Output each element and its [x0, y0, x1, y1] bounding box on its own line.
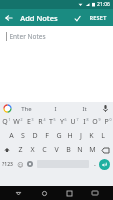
staticText: The — [21, 105, 32, 113]
button[interactable]: Back — [11, 186, 25, 200]
button[interactable]: E — [24, 115, 36, 129]
staticText: P — [104, 117, 109, 127]
staticText: Q — [2, 117, 8, 127]
staticText: ☺ — [17, 161, 24, 168]
staticText: W — [13, 117, 20, 127]
button[interactable]: A — [5, 129, 17, 143]
button[interactable]: M — [86, 143, 98, 157]
button[interactable]: Shift — [0, 143, 14, 157]
staticText: U — [70, 117, 76, 127]
staticText: E — [27, 117, 31, 127]
staticText: 6 — [64, 117, 67, 122]
button[interactable]: Settings — [25, 157, 35, 171]
button[interactable]: Home — [37, 186, 51, 200]
staticText: R — [38, 117, 43, 127]
button[interactable]: N — [74, 143, 86, 157]
staticText: T — [49, 117, 53, 127]
staticText: Enter Notes — [9, 32, 46, 41]
staticText: 7 — [76, 117, 79, 122]
staticText: X — [30, 145, 35, 155]
staticText: L — [101, 131, 105, 141]
button[interactable]: U — [69, 115, 80, 129]
staticText: V — [54, 145, 59, 155]
button[interactable]: K — [86, 129, 97, 143]
button[interactable]: Z — [14, 143, 26, 157]
staticText: I — [83, 117, 86, 127]
staticText: A — [9, 131, 14, 141]
button[interactable]: ?123 — [0, 157, 15, 171]
staticText: I — [54, 105, 57, 113]
button[interactable]: Y — [58, 115, 69, 129]
button[interactable]: V — [50, 143, 62, 157]
staticText: Add Notes — [20, 13, 58, 23]
staticText: M — [89, 145, 96, 155]
staticText: 9 — [98, 117, 101, 122]
button[interactable]: P — [102, 115, 113, 129]
button[interactable]: I — [80, 115, 91, 129]
staticText: K — [89, 131, 94, 141]
button[interactable]: RESET — [85, 14, 111, 21]
button[interactable]: Google — [4, 105, 11, 112]
staticText: It — [82, 105, 87, 113]
button[interactable]: Emoji — [15, 157, 25, 171]
button[interactable]: Back — [0, 9, 17, 26]
button[interactable]: F — [41, 129, 53, 143]
button[interactable]: S — [17, 129, 29, 143]
button[interactable]: It — [70, 105, 99, 113]
button[interactable]: Keyboard switcher — [88, 186, 102, 200]
staticText: F — [45, 131, 49, 141]
button[interactable]: I — [41, 105, 70, 113]
staticText: 4 — [43, 117, 46, 122]
staticText: O — [92, 117, 98, 127]
button[interactable]: D — [29, 129, 41, 143]
staticText: 5 — [53, 117, 56, 122]
button[interactable]: X — [26, 143, 38, 157]
button[interactable]: Backspace — [98, 143, 113, 157]
button[interactable]: Save — [69, 10, 85, 26]
staticText: RESET — [89, 14, 107, 21]
button[interactable]: O — [91, 115, 102, 129]
button[interactable]: The — [11, 105, 41, 113]
staticText: 21:06 — [97, 1, 110, 8]
button[interactable]: R — [36, 115, 47, 129]
staticText: 2 — [20, 117, 23, 122]
button[interactable]: C — [38, 143, 50, 157]
button[interactable]: Enter — [99, 159, 110, 170]
button[interactable]: Voice input — [99, 105, 111, 112]
staticText: ?123 — [2, 161, 13, 168]
button[interactable]: J — [75, 129, 86, 143]
button[interactable]: Recents — [62, 186, 76, 200]
staticText: 0 — [109, 117, 112, 122]
button[interactable]: . — [91, 157, 99, 171]
staticText: 3 — [31, 117, 34, 122]
button[interactable]: G — [53, 129, 64, 143]
staticText: S — [21, 131, 25, 141]
staticText: H — [67, 131, 73, 141]
button[interactable]: L — [97, 129, 108, 143]
staticText: D — [32, 131, 38, 141]
button[interactable]: H — [64, 129, 75, 143]
button[interactable]: Q — [0, 115, 12, 129]
staticText: Y — [60, 117, 64, 127]
button[interactable]: B — [62, 143, 74, 157]
staticText: 8 — [86, 117, 89, 122]
staticText: 1 — [8, 117, 11, 122]
staticText: C — [42, 145, 47, 155]
staticText: B — [66, 145, 71, 155]
staticText: N — [77, 145, 83, 155]
staticText: Z — [18, 145, 23, 155]
staticText: . — [94, 159, 96, 169]
staticText: J — [80, 131, 82, 141]
button[interactable]: T — [47, 115, 58, 129]
staticText: G — [56, 131, 62, 141]
button[interactable]: W — [12, 115, 24, 129]
